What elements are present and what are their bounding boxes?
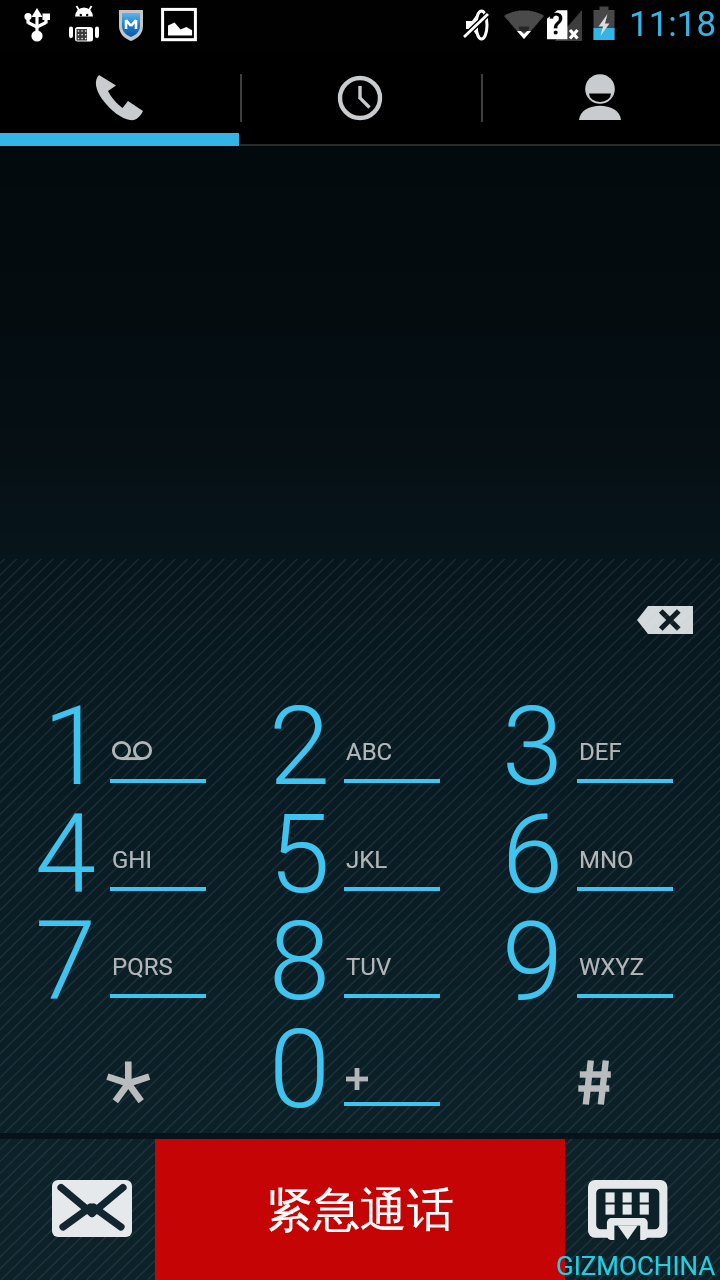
button[interactable] (477, 1012, 710, 1120)
staticText: 7 (35, 897, 97, 1005)
button[interactable]: Backspace (637, 606, 693, 634)
staticText: GHI (112, 846, 152, 874)
staticText: 0 (269, 1005, 331, 1113)
staticText: 6 (502, 790, 564, 898)
staticText: WXYZ (579, 953, 645, 981)
button[interactable]: 紧急通话 (155, 1139, 565, 1280)
button[interactable]: 4 (10, 797, 243, 905)
staticText: ABC (346, 738, 393, 766)
button[interactable]: 1 (10, 689, 243, 797)
button[interactable]: 8 (244, 904, 477, 1012)
button[interactable]: 0 (244, 1012, 477, 1120)
button[interactable] (10, 1012, 243, 1120)
button[interactable]: 9 (477, 904, 710, 1012)
staticText: MNO (579, 846, 634, 874)
staticText: 1 (43, 682, 105, 790)
staticText: 5 (269, 790, 331, 898)
button[interactable]: 7 (10, 904, 243, 1012)
staticText: 11:18 (629, 4, 717, 45)
button[interactable]: 5 (244, 797, 477, 905)
staticText: 4 (35, 790, 97, 898)
staticText: 9 (502, 897, 564, 1005)
staticText: PQRS (112, 953, 173, 981)
staticText: TUV (346, 953, 392, 981)
button[interactable]: Hide dialpad (565, 1139, 720, 1280)
staticText: ? (549, 6, 564, 41)
button[interactable]: Send message (0, 1139, 155, 1280)
button[interactable]: 2 (244, 689, 477, 797)
staticText: JKL (346, 846, 388, 874)
staticText: 3 (502, 682, 564, 790)
button[interactable]: Call log tab (240, 50, 480, 146)
button[interactable]: Dialpad tab (0, 50, 240, 146)
button[interactable]: 6 (477, 797, 710, 905)
staticText: DEF (579, 738, 622, 766)
staticText: GIZMOCHINA (556, 1251, 716, 1280)
staticText: 2 (269, 682, 331, 790)
button[interactable]: Contacts tab (480, 50, 720, 146)
button[interactable]: 3 (477, 689, 710, 797)
staticText: 8 (269, 897, 331, 1005)
staticText: 紧急通话 (266, 1181, 454, 1240)
